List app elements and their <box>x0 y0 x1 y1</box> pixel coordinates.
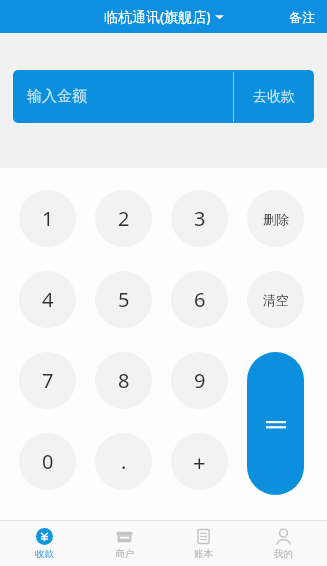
button[interactable]: 8 <box>95 352 152 409</box>
button[interactable]: + <box>171 433 228 490</box>
button[interactable]: 输入金额 <box>13 70 233 123</box>
staticText: . <box>121 448 127 475</box>
staticText: 8 <box>118 367 130 394</box>
button[interactable]: 1 <box>19 190 76 247</box>
staticText: 2 <box>118 205 130 232</box>
button[interactable]: 等于 <box>247 352 304 495</box>
staticText: 0 <box>42 448 54 475</box>
staticText: 5 <box>118 286 130 313</box>
staticText: 6 <box>194 286 206 313</box>
staticText: 4 <box>42 286 54 313</box>
button[interactable]: 清空 <box>247 271 304 328</box>
button[interactable]: 收款 <box>9 521 79 566</box>
staticText: 清空 <box>263 292 289 308</box>
staticText: 输入金额 <box>27 87 87 106</box>
button[interactable]: 去收款 <box>234 70 314 123</box>
button[interactable]: 我的 <box>248 521 318 566</box>
staticText: 账本 <box>194 548 213 560</box>
staticText: 7 <box>42 367 54 394</box>
staticText: 我的 <box>274 548 293 560</box>
staticText: 备注 <box>289 9 315 25</box>
button[interactable]: . <box>95 433 152 490</box>
button[interactable]: 备注 <box>277 0 327 33</box>
button[interactable]: 商户 <box>89 521 159 566</box>
staticText: 临杭通讯(旗舰店) <box>104 7 211 26</box>
staticText: 收款 <box>35 548 54 560</box>
staticText: 删除 <box>263 211 289 227</box>
button[interactable]: 2 <box>95 190 152 247</box>
staticText: 9 <box>194 367 206 394</box>
button[interactable]: 0 <box>19 433 76 490</box>
button[interactable]: 3 <box>171 190 228 247</box>
button[interactable]: 6 <box>171 271 228 328</box>
staticText: 商户 <box>115 548 134 560</box>
button[interactable]: 7 <box>19 352 76 409</box>
staticText: 去收款 <box>253 88 295 106</box>
staticText: + <box>193 447 206 477</box>
button[interactable]: 5 <box>95 271 152 328</box>
button[interactable]: 9 <box>171 352 228 409</box>
button[interactable]: 删除 <box>247 190 304 247</box>
button[interactable]: 4 <box>19 271 76 328</box>
staticText: 1 <box>42 205 54 232</box>
staticText: 3 <box>194 205 206 232</box>
button[interactable]: 账本 <box>168 521 238 566</box>
